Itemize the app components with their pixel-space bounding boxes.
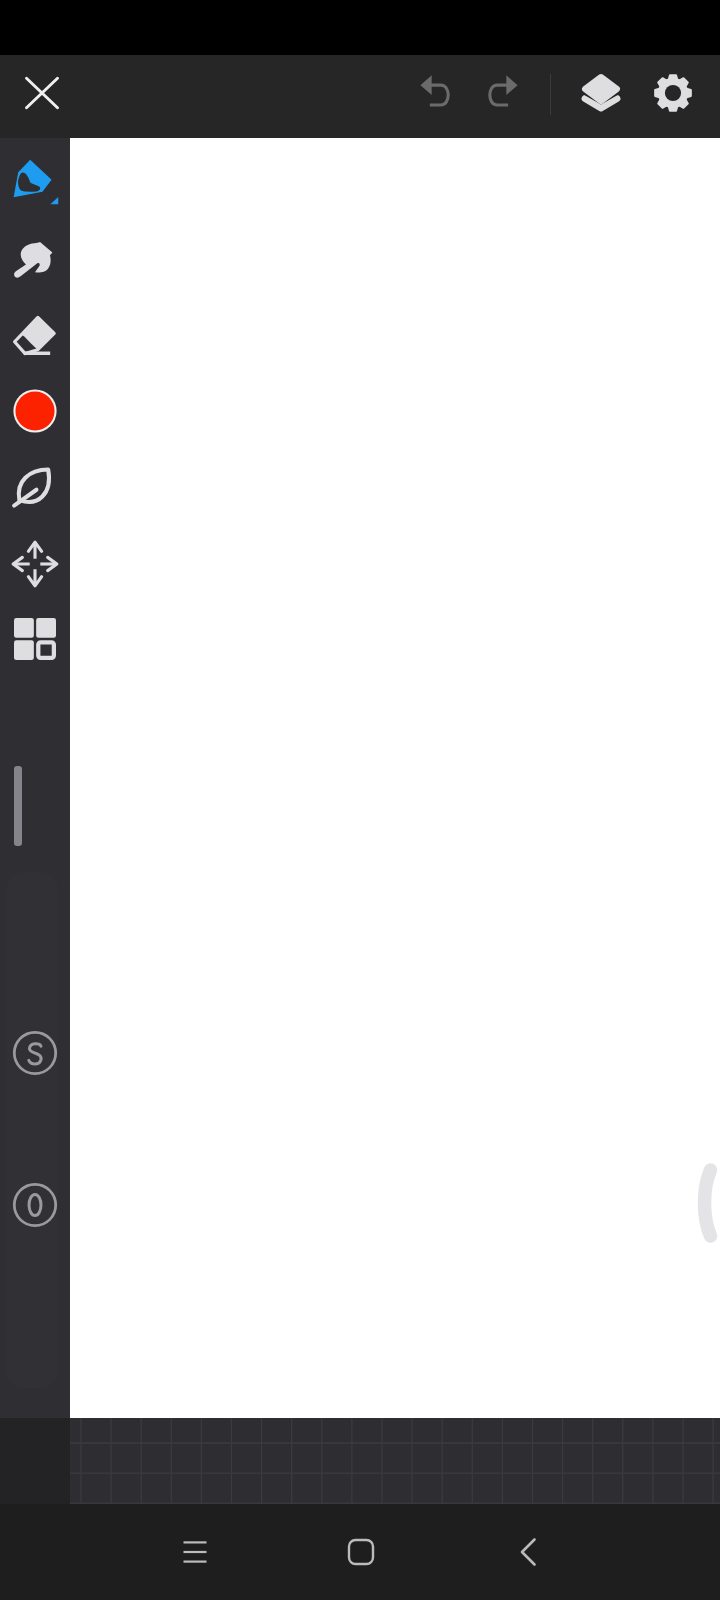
button[interactable]: Settings: [639, 59, 707, 127]
button[interactable]: Transform: [0, 526, 70, 602]
button[interactable]: Brush size: [14, 766, 22, 846]
button[interactable]: Redo: [466, 59, 534, 127]
button[interactable]: Undo: [404, 59, 472, 127]
button[interactable]: Grid: [0, 601, 70, 677]
button[interactable]: Back: [481, 1505, 575, 1599]
button[interactable]: Layers: [567, 59, 635, 127]
button[interactable]: Leaf: [0, 451, 70, 527]
button[interactable]: Home: [314, 1505, 408, 1599]
button[interactable]: Symmetry: [0, 1018, 70, 1088]
button[interactable]: Brush tool: [0, 143, 70, 219]
button[interactable]: Close: [8, 59, 76, 127]
button[interactable]: Colour: [0, 373, 70, 449]
button[interactable]: Smudge tool: [0, 221, 70, 297]
button[interactable]: Recent apps: [148, 1505, 242, 1599]
button[interactable]: Eraser tool: [0, 298, 70, 374]
button[interactable]: Opacity: [0, 1170, 70, 1240]
